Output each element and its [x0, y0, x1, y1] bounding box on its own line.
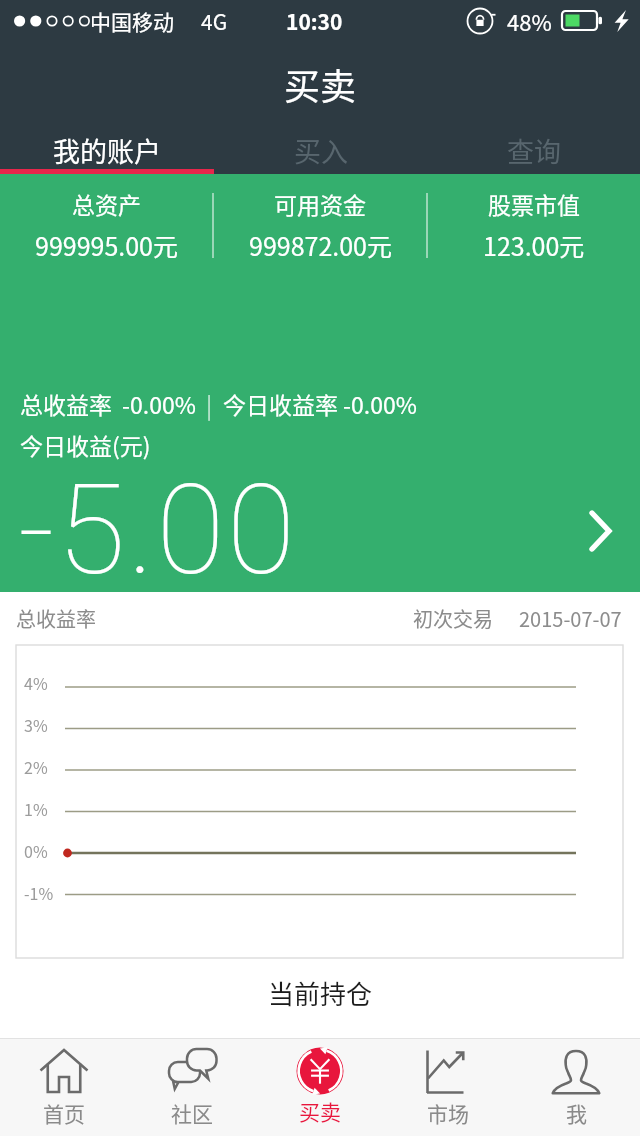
button[interactable]: 社区: [128, 1047, 256, 1136]
staticText: -5.00: [18, 457, 298, 588]
staticText: 2%: [24, 755, 48, 778]
staticText: 当前持仓: [268, 974, 373, 1012]
staticText: 可用资金: [274, 187, 366, 220]
staticText: 市场: [427, 1098, 469, 1128]
staticText: 今日收益(元): [20, 428, 151, 461]
staticText: 48%: [507, 5, 552, 37]
other: Rotation lock: [466, 7, 494, 35]
staticText: 中国移动: [90, 6, 174, 36]
staticText: 社区: [171, 1098, 213, 1128]
staticText: 首页: [43, 1098, 85, 1128]
button[interactable]: 买卖: [256, 1047, 384, 1136]
staticText: 1%: [24, 797, 48, 820]
staticText: 今日收益率: [223, 387, 338, 420]
staticText: -1%: [24, 881, 54, 904]
staticText: |: [206, 387, 213, 420]
staticText: 总收益率: [20, 387, 112, 420]
button[interactable]: 市场: [384, 1047, 512, 1136]
staticText: 股票市值: [488, 187, 580, 220]
staticText: 我的账户: [53, 131, 161, 170]
staticText: 10:30: [286, 6, 343, 36]
staticText: 0%: [24, 839, 48, 862]
button[interactable]: 首页: [0, 1047, 128, 1136]
staticText: 3%: [24, 713, 48, 736]
button[interactable]: 我的账户: [0, 126, 214, 174]
staticText: 买入: [294, 131, 348, 170]
staticText: 初次交易: [413, 604, 493, 633]
button[interactable]: 查询: [427, 126, 640, 174]
button[interactable]: 当前持仓: [0, 958, 640, 1027]
staticText: 总收益率: [16, 604, 96, 633]
staticText: 我: [566, 1098, 587, 1128]
staticText: 查询: [507, 131, 561, 170]
staticText: 999872.00元: [249, 227, 392, 263]
staticText: -0.00%: [343, 387, 417, 420]
staticText: 999995.00元: [35, 227, 178, 263]
staticText: 123.00元: [483, 227, 585, 263]
staticText: 总资产: [72, 187, 141, 220]
button[interactable]: 我: [512, 1047, 640, 1136]
staticText: 买卖: [299, 1096, 341, 1126]
staticText: 4%: [24, 671, 48, 694]
staticText: -0.00%: [122, 387, 196, 420]
button[interactable]: 买入: [214, 126, 427, 174]
staticText: 2015-07-07: [519, 604, 622, 633]
staticText: 4G: [201, 6, 228, 36]
button[interactable]: More details: [582, 503, 622, 559]
staticText: 买卖: [284, 58, 357, 110]
